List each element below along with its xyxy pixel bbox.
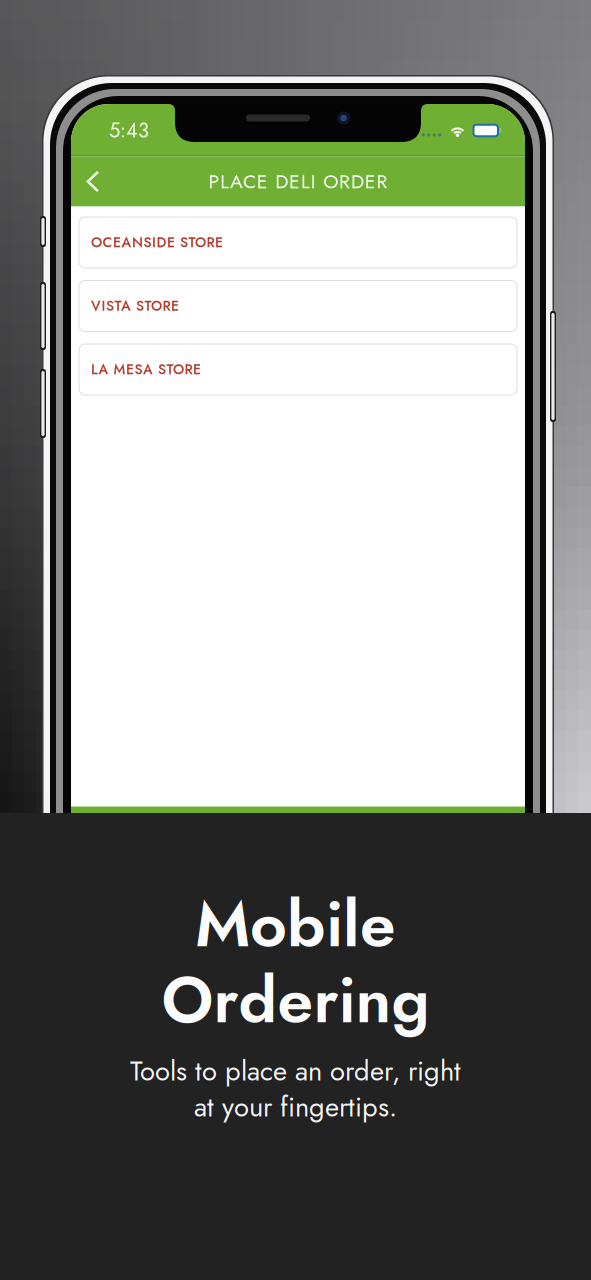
button[interactable]: Tab (298, 811, 411, 873)
button[interactable]: VISTA STORE (79, 280, 517, 331)
button[interactable]: Tab (71, 811, 184, 873)
staticText: VISTA STORE (91, 296, 179, 316)
staticText: Tools to place an order, right (130, 1051, 461, 1091)
button[interactable]: LA MESA STORE (79, 344, 517, 395)
staticText: 5:43 (109, 116, 149, 145)
button[interactable]: Tab (411, 811, 525, 873)
staticText: Mobile (195, 878, 396, 970)
button[interactable]: Back (71, 156, 115, 206)
button[interactable]: Tab (184, 811, 298, 873)
staticText: PLACE DELI ORDER (208, 167, 387, 195)
staticText: LA MESA STORE (91, 359, 201, 380)
staticText: at your fingertips. (194, 1087, 397, 1127)
staticText: OCEANSIDE STORE (91, 232, 223, 253)
staticText: Ordering (161, 954, 429, 1046)
button[interactable]: OCEANSIDE STORE (79, 217, 517, 268)
